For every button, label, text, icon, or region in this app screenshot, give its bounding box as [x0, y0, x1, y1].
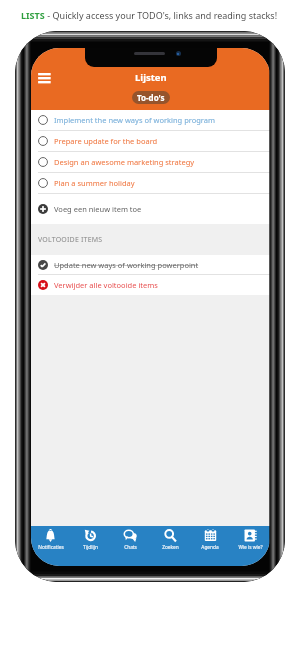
staticText: VOLTOOIDE ITEMS [38, 235, 103, 245]
staticText: Zoeken [162, 544, 179, 551]
staticText: Lijsten [135, 71, 167, 84]
staticText: Plan a summer holiday [54, 178, 135, 188]
button[interactable]: Agenda [190, 526, 230, 566]
button[interactable]: Implement the new ways of working progra… [31, 110, 270, 131]
staticText: Voeg een nieuw item toe [54, 204, 142, 214]
button[interactable]: Design an awesome marketing strategy [31, 152, 270, 173]
staticText: Verwijder alle voltooide items [54, 280, 158, 290]
button[interactable]: Voeg een nieuw item toe [31, 194, 270, 224]
button[interactable]: Wie is wie? [230, 526, 270, 566]
staticText: LISTS [21, 9, 45, 21]
button[interactable]: Tijdlijn [70, 526, 110, 566]
button[interactable]: Plan a summer holiday [31, 173, 270, 193]
button[interactable]: Notificaties [31, 526, 70, 566]
staticText: Chats [124, 544, 137, 551]
staticText: To-do's [137, 92, 165, 103]
button[interactable]: Update new ways of working powerpoint [31, 255, 270, 274]
button[interactable]: Zoeken [150, 526, 190, 566]
staticText: Wie is wie? [238, 544, 263, 551]
button[interactable]: Menu [34, 68, 56, 88]
staticText: Tijdlijn [83, 544, 98, 551]
staticText: Implement the new ways of working progra… [54, 115, 216, 125]
staticText: Agenda [201, 544, 219, 551]
button[interactable]: Prepare update for the board [31, 131, 270, 152]
button[interactable]: Chats [110, 526, 150, 566]
button[interactable]: To-do's [132, 91, 170, 104]
staticText: Prepare update for the board [54, 136, 158, 146]
staticText: Update new ways of working powerpoint [54, 260, 199, 270]
staticText: Notificaties [38, 544, 64, 551]
staticText: - Quickly access your TODO's, links and … [45, 9, 278, 21]
button[interactable]: Verwijder alle voltooide items [31, 275, 270, 295]
staticText: Design an awesome marketing strategy [54, 157, 195, 167]
